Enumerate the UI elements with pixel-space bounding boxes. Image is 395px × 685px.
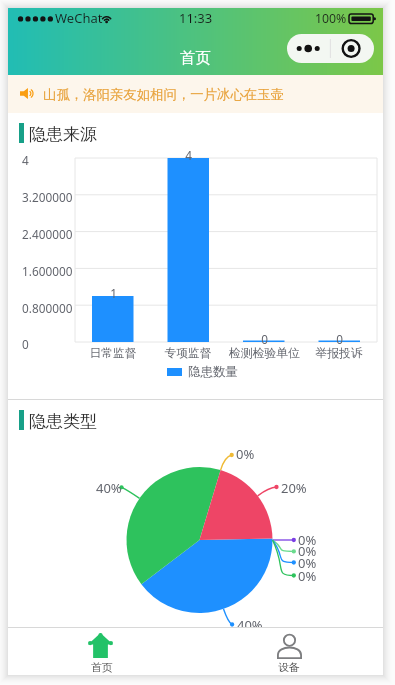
staticText: 3.200000 xyxy=(22,189,73,205)
staticText: 0 xyxy=(336,331,343,347)
staticText: 1 xyxy=(110,285,117,301)
staticText: 0% xyxy=(298,554,317,572)
staticText: 检测检验单位 xyxy=(229,346,300,361)
staticText: 举报投诉 xyxy=(315,346,363,361)
staticText: 20% xyxy=(281,479,307,497)
staticText: 山孤，洛阳亲友如相问，一片冰心在玉壶 xyxy=(43,86,285,103)
staticText: 隐患类型 xyxy=(29,411,97,432)
staticText: 首页 xyxy=(180,48,211,68)
staticText: 11:33 xyxy=(179,9,213,27)
button[interactable]: 山孤，洛阳亲友如相问，一片冰心在玉壶 xyxy=(8,75,383,113)
staticText: 4 xyxy=(185,147,192,163)
staticText: 2.400000 xyxy=(22,226,73,242)
button[interactable]: 设备 xyxy=(196,628,383,675)
staticText: 设备 xyxy=(278,661,300,675)
staticText: 日常监督 xyxy=(89,346,137,361)
staticText: 首页 xyxy=(91,661,113,675)
staticText: 40% xyxy=(237,616,263,627)
staticText: 0% xyxy=(298,542,317,560)
staticText: 专项监督 xyxy=(164,346,212,361)
staticText: 0% xyxy=(298,531,317,549)
staticText: 隐患来源 xyxy=(29,124,97,145)
staticText: 0 xyxy=(22,336,29,352)
staticText: 0% xyxy=(236,445,255,463)
staticText: 1.600000 xyxy=(22,263,73,279)
staticText: 40% xyxy=(96,479,122,497)
staticText: WeChat xyxy=(55,9,103,27)
staticText: 0 xyxy=(261,331,268,347)
staticText: 隐患数量 xyxy=(188,364,238,380)
staticText: 4 xyxy=(22,152,29,168)
staticText: 0% xyxy=(298,567,317,585)
button[interactable]: Mini program menu xyxy=(287,34,374,63)
staticText: 100% xyxy=(315,10,347,27)
button[interactable]: 首页 xyxy=(8,628,196,675)
staticText: 0.800000 xyxy=(22,300,73,316)
